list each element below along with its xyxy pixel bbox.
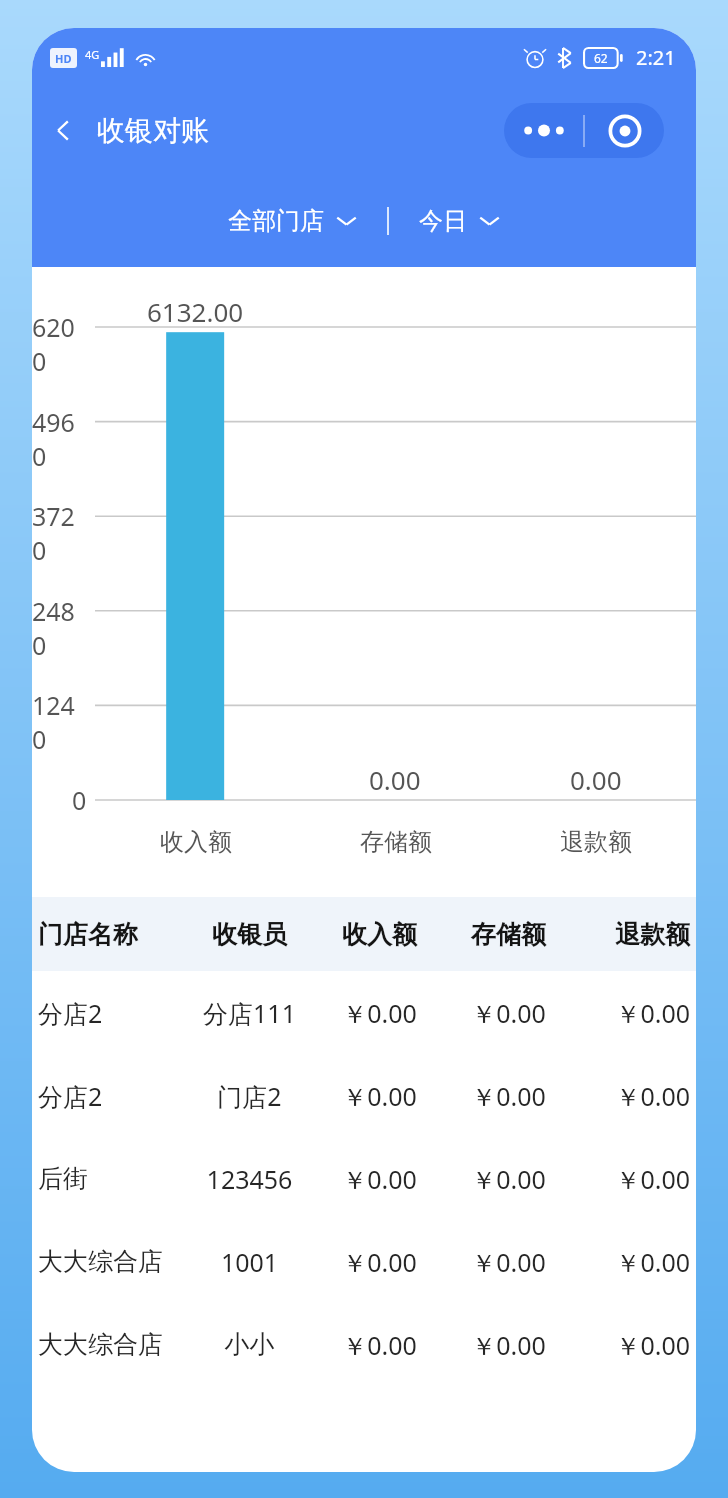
staticText: ￥0.00 bbox=[579, 1245, 690, 1279]
staticText: 4960 bbox=[32, 405, 87, 473]
staticText: 分店111 bbox=[190, 996, 309, 1030]
staticText: 今日 bbox=[419, 206, 467, 236]
button[interactable]: 今日 bbox=[413, 198, 506, 244]
staticText: 1001 bbox=[190, 1245, 309, 1279]
staticText: 123456 bbox=[190, 1162, 309, 1196]
staticText: 大大综合店 bbox=[38, 1329, 178, 1360]
staticText: HD bbox=[55, 51, 72, 66]
staticText: 大大综合店 bbox=[38, 1246, 178, 1277]
staticText: 全部门店 bbox=[228, 206, 324, 236]
staticText: 小小 bbox=[190, 1329, 309, 1360]
other: Back bbox=[50, 117, 77, 144]
staticText: 分店2 bbox=[38, 1079, 178, 1113]
staticText: 0 bbox=[72, 783, 87, 817]
button[interactable]: 全部门店 bbox=[222, 198, 363, 244]
staticText: 收入额 bbox=[160, 827, 232, 857]
button[interactable]: 大大综合店 bbox=[32, 1303, 696, 1386]
staticText: ￥0.00 bbox=[450, 996, 567, 1030]
staticText: ￥0.00 bbox=[321, 1328, 438, 1362]
staticText: 存储额 bbox=[450, 919, 567, 950]
button[interactable]: 大大综合店 bbox=[32, 1220, 696, 1303]
button[interactable]: 后街 bbox=[32, 1137, 696, 1220]
staticText: 分店2 bbox=[38, 996, 178, 1030]
staticText: 6132.00 bbox=[147, 294, 244, 329]
button[interactable]: 分店2 bbox=[32, 1054, 696, 1137]
staticText: 门店2 bbox=[190, 1079, 309, 1113]
staticText: 4G bbox=[85, 47, 100, 62]
staticText: 2:21 bbox=[636, 44, 676, 71]
staticText: 3720 bbox=[32, 499, 87, 567]
staticText: 1240 bbox=[32, 688, 87, 756]
staticText: 退款额 bbox=[560, 827, 632, 857]
staticText: 收银对账 bbox=[97, 113, 209, 148]
staticText: ￥0.00 bbox=[321, 996, 438, 1030]
staticText: ￥0.00 bbox=[450, 1079, 567, 1113]
staticText: 收入额 bbox=[321, 919, 438, 950]
staticText: 6200 bbox=[32, 310, 87, 378]
staticText: 62 bbox=[594, 50, 608, 66]
staticText: 存储额 bbox=[360, 827, 432, 857]
staticText: 退款额 bbox=[579, 919, 690, 950]
staticText: 0.00 bbox=[369, 762, 421, 797]
button[interactable]: Back bbox=[38, 105, 221, 156]
staticText: 收银员 bbox=[190, 919, 309, 950]
staticText: ￥0.00 bbox=[321, 1079, 438, 1113]
staticText: ￥0.00 bbox=[450, 1328, 567, 1362]
button[interactable]: 分店2 bbox=[32, 971, 696, 1054]
staticText: ￥0.00 bbox=[450, 1245, 567, 1279]
staticText: 门店名称 bbox=[38, 919, 178, 950]
staticText: ￥0.00 bbox=[450, 1162, 567, 1196]
staticText: 2480 bbox=[32, 594, 87, 662]
staticText: ￥0.00 bbox=[321, 1162, 438, 1196]
staticText: ￥0.00 bbox=[579, 996, 690, 1030]
staticText: 后街 bbox=[38, 1163, 178, 1194]
staticText: ￥0.00 bbox=[579, 1328, 690, 1362]
staticText: ￥0.00 bbox=[579, 1079, 690, 1113]
staticText: 0.00 bbox=[570, 762, 622, 797]
staticText: ￥0.00 bbox=[321, 1245, 438, 1279]
button[interactable]: Menu and Close bbox=[504, 103, 664, 158]
staticText: ￥0.00 bbox=[579, 1162, 690, 1196]
